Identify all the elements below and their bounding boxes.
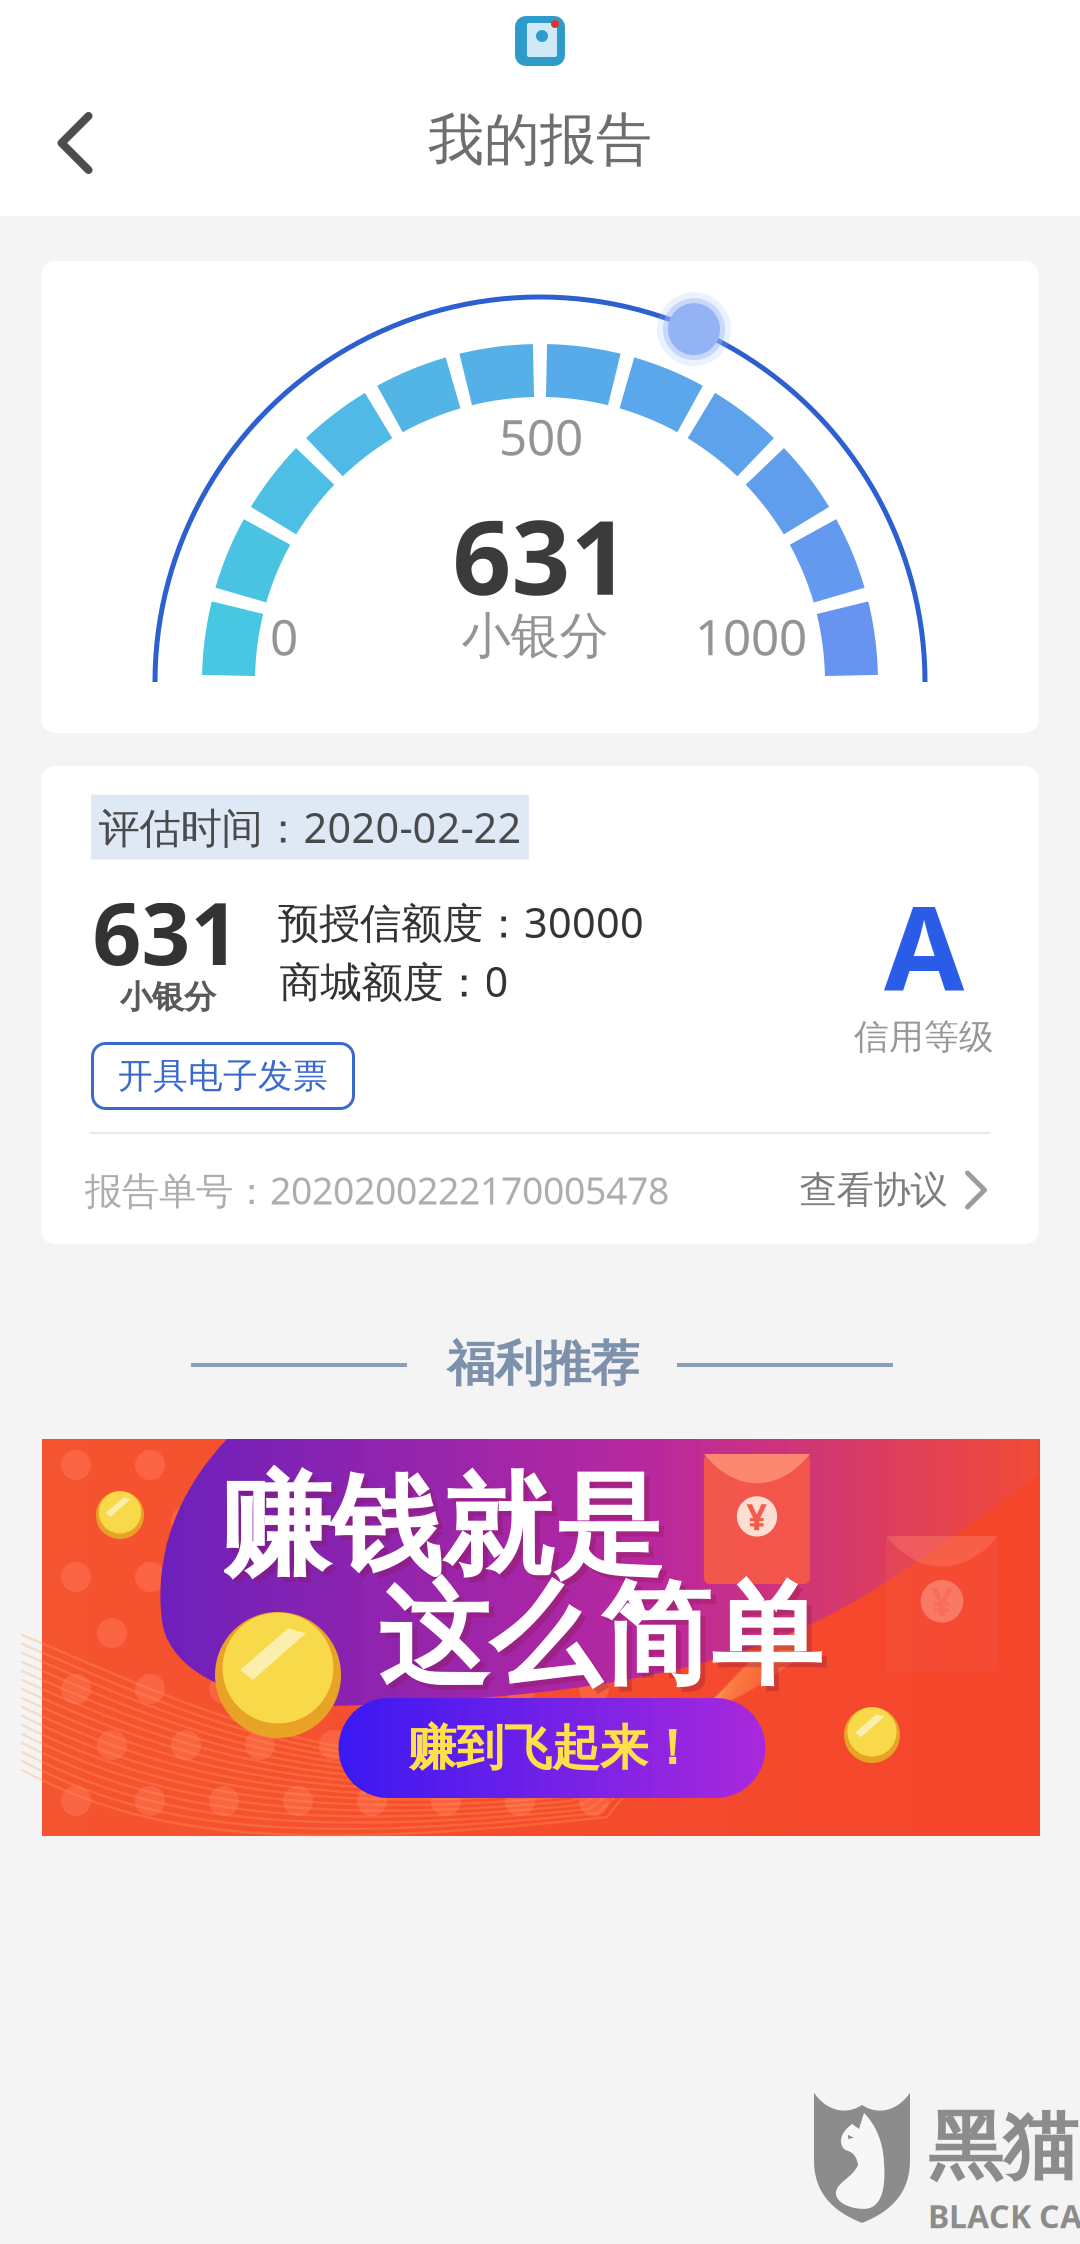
staticText: 631 bbox=[92, 875, 239, 989]
staticText: 预授信额度：30000 bbox=[278, 895, 644, 949]
staticText: 查看协议 bbox=[799, 1167, 947, 1213]
staticText: 这么简单 bbox=[378, 1568, 822, 1704]
staticText: ¥ bbox=[931, 1576, 953, 1627]
staticText: 这么简单 bbox=[383, 1573, 827, 1709]
staticText: 赚钱就是 bbox=[220, 1459, 664, 1595]
staticText: 报告单号：2020200222170005478 bbox=[85, 1165, 669, 1215]
staticText: A bbox=[884, 869, 964, 1023]
staticText: 我的报告 bbox=[428, 106, 652, 174]
staticText: 黑猫 bbox=[928, 2101, 1078, 2193]
staticText: 商城额度：0 bbox=[279, 954, 508, 1008]
staticText: 赚到飞起来！ bbox=[408, 1718, 696, 1777]
staticText: ¥ bbox=[746, 1492, 767, 1540]
button[interactable]: 查看协议 bbox=[799, 1167, 988, 1213]
staticText: 500 bbox=[499, 403, 583, 469]
button[interactable]: 赚钱就是这么简单 赚到飞起来 bbox=[42, 1439, 1038, 1836]
staticText: 小银分 bbox=[120, 977, 216, 1017]
staticText: 0 bbox=[270, 603, 298, 669]
staticText: 开具电子发票 bbox=[118, 1055, 328, 1097]
staticText: 小银分 bbox=[461, 606, 608, 666]
staticText: BLACK CAT bbox=[928, 2195, 1080, 2237]
staticText: 评估时间：2020-02-22 bbox=[98, 800, 521, 854]
staticText: 631 bbox=[452, 487, 629, 623]
button[interactable]: 返回 bbox=[8, 77, 142, 209]
staticText: 1000 bbox=[695, 603, 807, 669]
staticText: 信用等级 bbox=[854, 1016, 994, 1058]
staticText: 赚钱就是 bbox=[225, 1464, 669, 1600]
button[interactable]: 开具电子发票 bbox=[92, 1043, 353, 1108]
staticText: 福利推荐 bbox=[447, 1334, 639, 1393]
